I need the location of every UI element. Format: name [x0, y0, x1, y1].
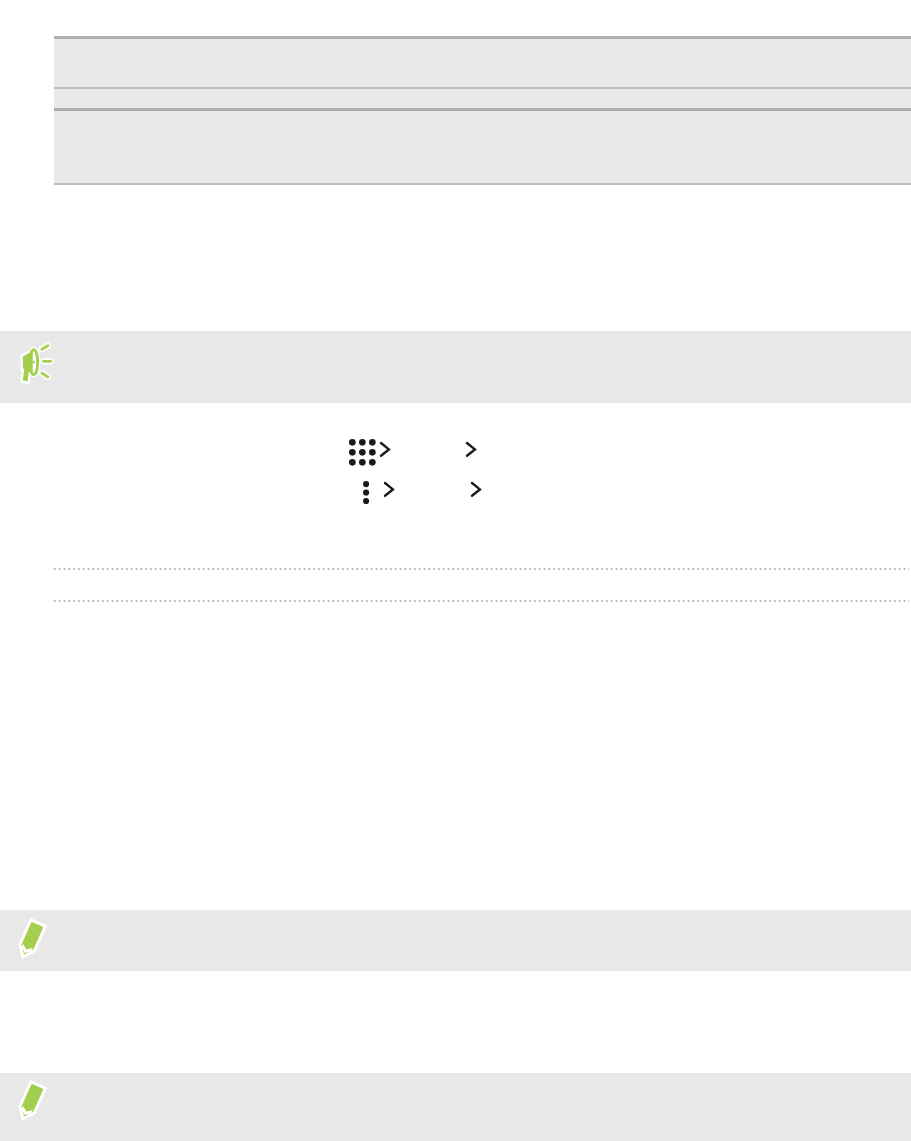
button[interactable]: Announcement [13, 345, 51, 383]
button[interactable]: Note [12, 920, 50, 958]
button[interactable] [0, 910, 911, 971]
button[interactable] [0, 1073, 911, 1141]
button[interactable]: More options [363, 481, 371, 503]
button[interactable] [0, 331, 911, 403]
button[interactable]: All apps [349, 439, 379, 465]
button[interactable]: Note [12, 1082, 50, 1120]
